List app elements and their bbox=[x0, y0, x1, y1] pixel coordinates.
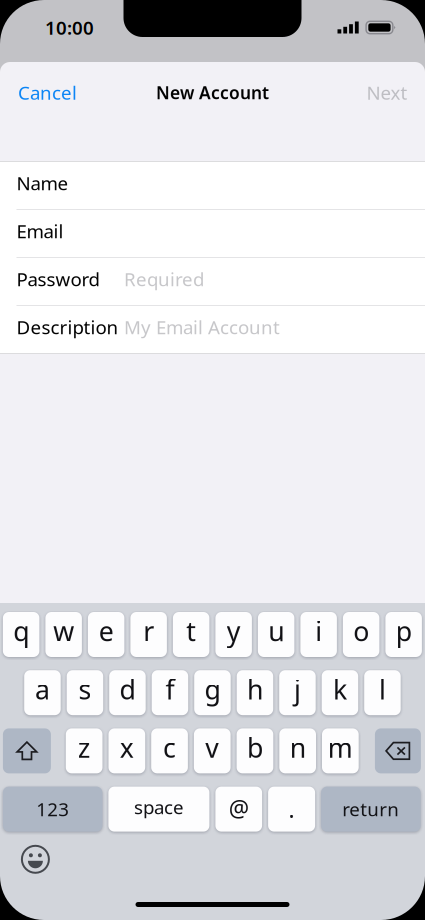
button[interactable]: o bbox=[343, 612, 379, 657]
button[interactable]: @ bbox=[215, 787, 262, 832]
staticText: My Email Account bbox=[124, 315, 280, 339]
button[interactable]: Delete bbox=[375, 728, 421, 773]
staticText: f bbox=[165, 671, 174, 707]
button[interactable]: f bbox=[152, 670, 188, 715]
button[interactable]: w bbox=[45, 612, 82, 657]
button[interactable]: g bbox=[194, 670, 231, 715]
staticText: Name bbox=[17, 171, 69, 195]
button[interactable]: e bbox=[88, 612, 124, 657]
button[interactable]: b bbox=[237, 728, 273, 773]
staticText: j bbox=[294, 671, 301, 707]
staticText: e bbox=[99, 613, 114, 649]
staticText: n bbox=[290, 730, 306, 765]
staticText: r bbox=[143, 613, 154, 649]
staticText: Next bbox=[366, 80, 407, 105]
staticText: w bbox=[53, 613, 74, 649]
button[interactable]: 123 bbox=[3, 787, 102, 832]
staticText: Cancel bbox=[18, 80, 77, 105]
staticText: 10:00 bbox=[45, 15, 94, 40]
staticText: Password bbox=[17, 267, 100, 291]
button[interactable]: s bbox=[67, 670, 103, 715]
staticText: x bbox=[120, 730, 134, 765]
staticText: a bbox=[35, 671, 50, 707]
staticText: u bbox=[268, 613, 284, 649]
button[interactable]: Emoji keyboard bbox=[21, 845, 49, 873]
button[interactable]: d bbox=[109, 670, 146, 715]
staticText: t bbox=[186, 613, 196, 649]
button[interactable]: k bbox=[322, 670, 358, 715]
button[interactable]: n bbox=[279, 728, 316, 773]
button[interactable]: . bbox=[268, 787, 315, 832]
button[interactable]: p bbox=[385, 612, 422, 657]
staticText: b bbox=[247, 730, 263, 765]
staticText: q bbox=[13, 613, 29, 649]
button[interactable]: a bbox=[24, 670, 61, 715]
staticText: k bbox=[333, 671, 347, 707]
staticText: Email bbox=[17, 219, 64, 243]
staticText: c bbox=[163, 730, 176, 765]
button[interactable]: y bbox=[215, 612, 252, 657]
staticText: l bbox=[379, 671, 386, 707]
staticText: @ bbox=[229, 793, 249, 823]
button[interactable]: c bbox=[151, 728, 188, 773]
staticText: New Account bbox=[156, 81, 269, 104]
staticText: m bbox=[328, 730, 353, 765]
staticText: 123 bbox=[36, 797, 69, 821]
button[interactable]: space bbox=[108, 787, 209, 832]
button[interactable]: u bbox=[258, 612, 294, 657]
staticText: space bbox=[134, 795, 184, 819]
staticText: return bbox=[342, 797, 399, 821]
button[interactable]: m bbox=[322, 728, 359, 773]
button[interactable]: q bbox=[3, 612, 39, 657]
button[interactable]: l bbox=[364, 670, 401, 715]
button[interactable]: Next bbox=[366, 80, 407, 105]
staticText: p bbox=[396, 613, 412, 649]
staticText: i bbox=[315, 613, 322, 649]
button[interactable]: h bbox=[237, 670, 273, 715]
staticText: h bbox=[247, 671, 263, 707]
button[interactable]: i bbox=[300, 612, 337, 657]
staticText: o bbox=[353, 613, 369, 649]
button[interactable]: return bbox=[321, 787, 421, 832]
staticText: Description bbox=[17, 315, 119, 339]
button[interactable]: r bbox=[130, 612, 167, 657]
button[interactable]: v bbox=[194, 728, 231, 773]
staticText: s bbox=[78, 671, 91, 707]
button[interactable]: Name bbox=[0, 162, 425, 210]
button[interactable]: Email bbox=[0, 210, 425, 258]
staticText: g bbox=[204, 671, 220, 707]
button[interactable]: Shift bbox=[3, 728, 51, 773]
staticText: d bbox=[119, 671, 135, 707]
button[interactable]: Description bbox=[0, 306, 425, 353]
button[interactable]: j bbox=[279, 670, 316, 715]
button[interactable]: z bbox=[66, 728, 102, 773]
staticText: . bbox=[289, 794, 295, 824]
staticText: v bbox=[205, 730, 219, 765]
button[interactable]: x bbox=[108, 728, 145, 773]
button[interactable]: Password bbox=[0, 258, 425, 306]
staticText: Required bbox=[124, 267, 204, 291]
button[interactable]: Cancel bbox=[18, 80, 77, 105]
staticText: z bbox=[78, 730, 91, 765]
button[interactable]: t bbox=[173, 612, 209, 657]
staticText: y bbox=[227, 613, 241, 649]
